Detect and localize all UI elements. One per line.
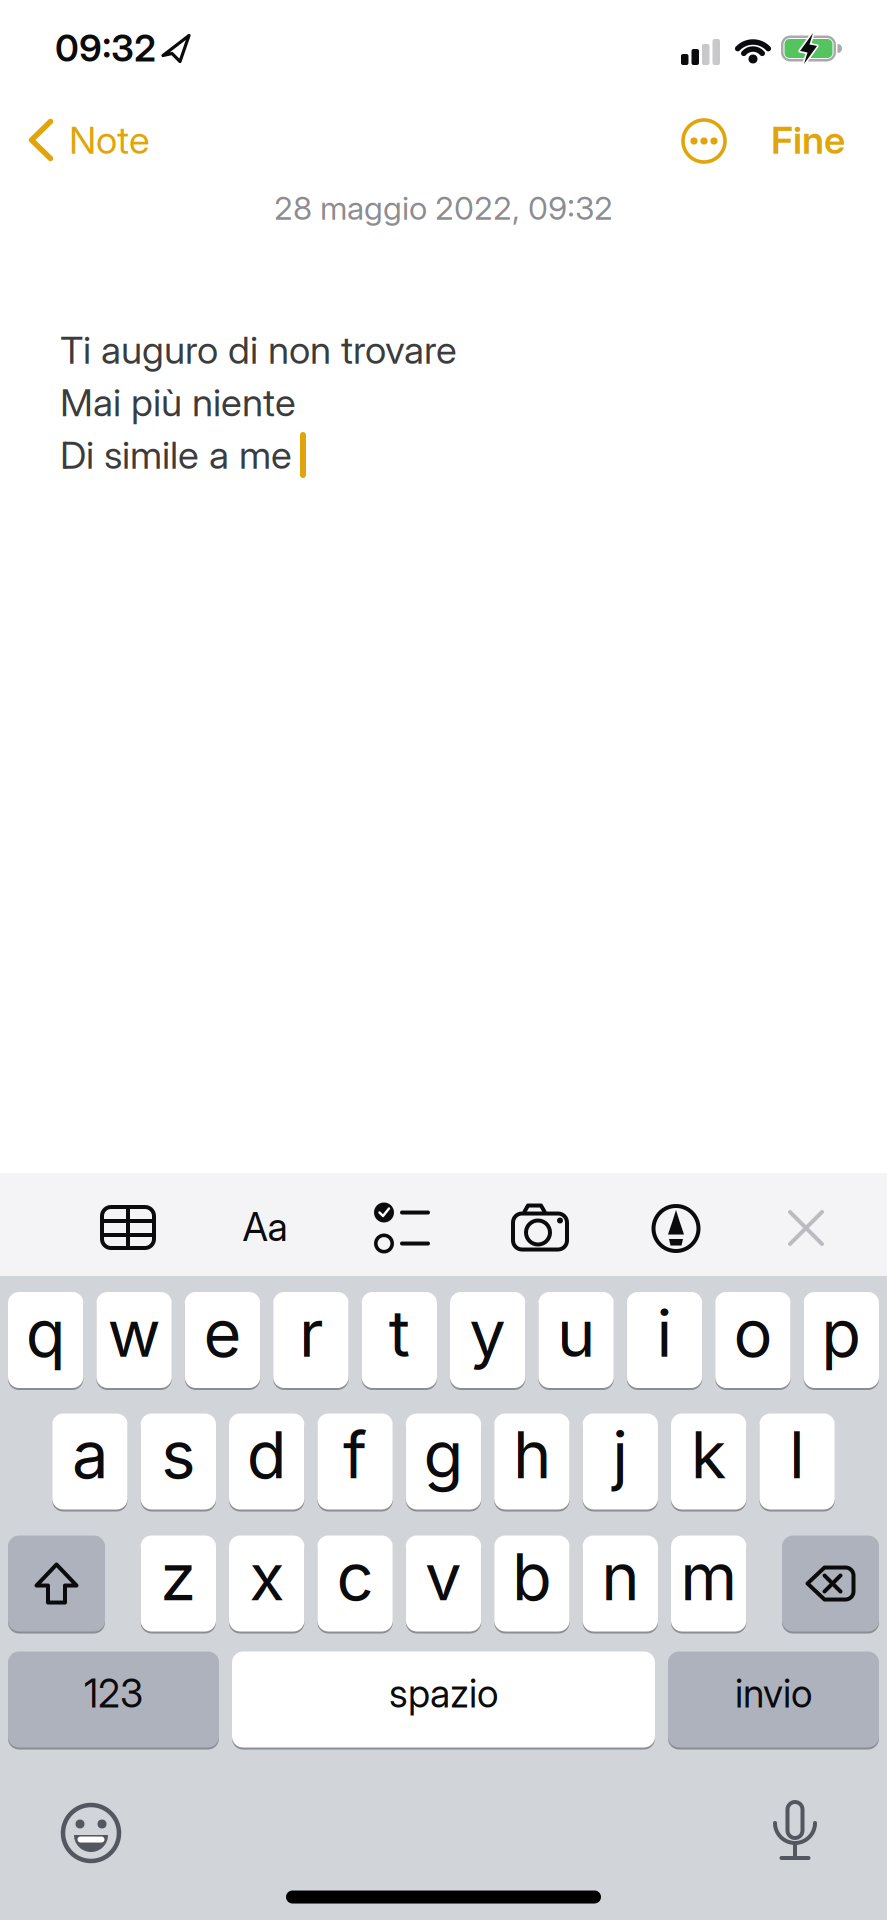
staticText: h (513, 1415, 551, 1494)
button[interactable]: w (96, 1291, 172, 1389)
button[interactable]: 123 (8, 1650, 219, 1748)
button[interactable]: u (538, 1291, 614, 1389)
staticText: c (337, 1537, 374, 1616)
staticText: j (612, 1415, 628, 1494)
staticText: t (389, 1294, 410, 1372)
button[interactable]: Elenco puntato (362, 1187, 442, 1267)
button[interactable]: p (804, 1291, 879, 1389)
staticText: Note (69, 117, 150, 163)
staticText: g (423, 1415, 463, 1494)
button[interactable]: Emoji (51, 1793, 131, 1873)
button[interactable]: Maiuscole (8, 1534, 105, 1632)
staticText: 09:32 (55, 26, 156, 70)
button[interactable]: Altro (680, 117, 728, 165)
staticText: p (821, 1294, 861, 1372)
button[interactable]: t (362, 1291, 437, 1389)
button[interactable]: m (671, 1534, 746, 1632)
button[interactable]: Tabella (88, 1187, 168, 1267)
staticText: v (425, 1537, 462, 1616)
staticText: y (469, 1294, 506, 1372)
staticText: u (557, 1294, 595, 1372)
button[interactable]: r (273, 1291, 349, 1389)
button[interactable]: z (141, 1534, 216, 1632)
staticText: w (108, 1294, 161, 1372)
staticText: Fine (771, 117, 845, 163)
staticText: d (247, 1415, 287, 1494)
staticText: spazio (389, 1670, 498, 1717)
button[interactable]: l (759, 1412, 835, 1510)
staticText: 123 (84, 1670, 143, 1717)
button[interactable]: o (715, 1291, 791, 1389)
staticText: n (601, 1537, 639, 1616)
staticText: e (203, 1294, 241, 1372)
button[interactable]: a (52, 1412, 128, 1510)
button[interactable]: x (229, 1534, 304, 1632)
button[interactable]: Fotocamera (495, 1187, 585, 1267)
button[interactable]: invio (668, 1650, 879, 1748)
staticText: Ti auguro di non trovare (60, 327, 457, 373)
button[interactable]: f (317, 1412, 393, 1510)
staticText: invio (735, 1670, 812, 1717)
button[interactable]: y (450, 1291, 525, 1389)
button[interactable]: s (141, 1412, 216, 1510)
button[interactable]: d (229, 1412, 304, 1510)
button[interactable]: q (8, 1291, 83, 1389)
button[interactable]: i (627, 1291, 702, 1389)
button[interactable]: spazio (232, 1650, 655, 1748)
staticText: i (656, 1294, 672, 1372)
button[interactable]: k (671, 1412, 746, 1510)
staticText: Mai più niente (60, 379, 296, 425)
button[interactable]: c (317, 1534, 393, 1632)
button[interactable]: Indietro: Note (0, 117, 260, 163)
staticText: x (249, 1537, 284, 1616)
staticText: z (160, 1537, 196, 1616)
button[interactable]: j (583, 1412, 658, 1510)
button[interactable]: g (406, 1412, 481, 1510)
staticText: q (26, 1294, 66, 1372)
button[interactable]: e (185, 1291, 260, 1389)
staticText: a (72, 1415, 108, 1494)
staticText: b (512, 1537, 552, 1616)
staticText: k (691, 1415, 727, 1494)
button[interactable]: Fine (771, 117, 845, 163)
staticText: m (680, 1537, 737, 1616)
button[interactable]: Cancella (782, 1534, 879, 1632)
button[interactable]: n (583, 1534, 658, 1632)
staticText: l (789, 1415, 805, 1494)
button[interactable]: v (406, 1534, 481, 1632)
button[interactable]: Chiudi (766, 1188, 846, 1268)
staticText: Di simile a me (60, 432, 292, 478)
staticText: r (299, 1294, 323, 1372)
button[interactable]: Markup (636, 1188, 716, 1268)
staticText: o (733, 1294, 772, 1372)
button[interactable]: Formato (220, 1187, 310, 1267)
staticText: s (161, 1415, 195, 1494)
staticText: f (343, 1415, 367, 1494)
button[interactable]: h (494, 1412, 570, 1510)
staticText: Aa (242, 1204, 287, 1250)
button[interactable]: b (494, 1534, 570, 1632)
staticText: 28 maggio 2022, 09:32 (274, 189, 613, 227)
button[interactable]: Dettatura (760, 1790, 830, 1870)
